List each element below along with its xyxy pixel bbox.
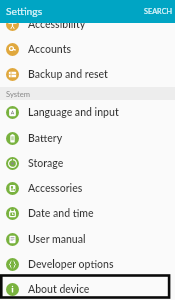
button[interactable]: Accessories [0, 176, 175, 201]
staticText: Storage [28, 157, 64, 170]
button[interactable]: User manual [0, 227, 175, 252]
staticText: Backup and reset [28, 68, 108, 81]
staticText: Settings [6, 5, 43, 17]
button[interactable]: Developer options [0, 252, 175, 277]
staticText: Language and input [28, 106, 119, 119]
button[interactable]: SEARCH [136, 3, 175, 20]
staticText: User manual [28, 233, 86, 246]
staticText: Developer options [28, 258, 114, 271]
button[interactable]: Date and time [0, 201, 175, 226]
staticText: Accessories [28, 182, 83, 195]
button[interactable]: Storage [0, 151, 175, 176]
button[interactable]: Language and input [0, 100, 175, 125]
button[interactable]: Backup and reset [0, 62, 175, 87]
button[interactable]: About device [0, 277, 175, 300]
staticText: Battery [28, 132, 63, 145]
staticText: SEARCH [144, 7, 173, 16]
button[interactable]: Accounts [0, 37, 175, 62]
staticText: Accounts [28, 43, 72, 56]
button[interactable]: Battery [0, 126, 175, 151]
button[interactable]: Accessibility [0, 12, 175, 37]
staticText: About device [28, 283, 90, 296]
staticText: System [6, 89, 31, 98]
staticText: Accessibility [28, 18, 86, 31]
staticText: Date and time [28, 207, 94, 220]
